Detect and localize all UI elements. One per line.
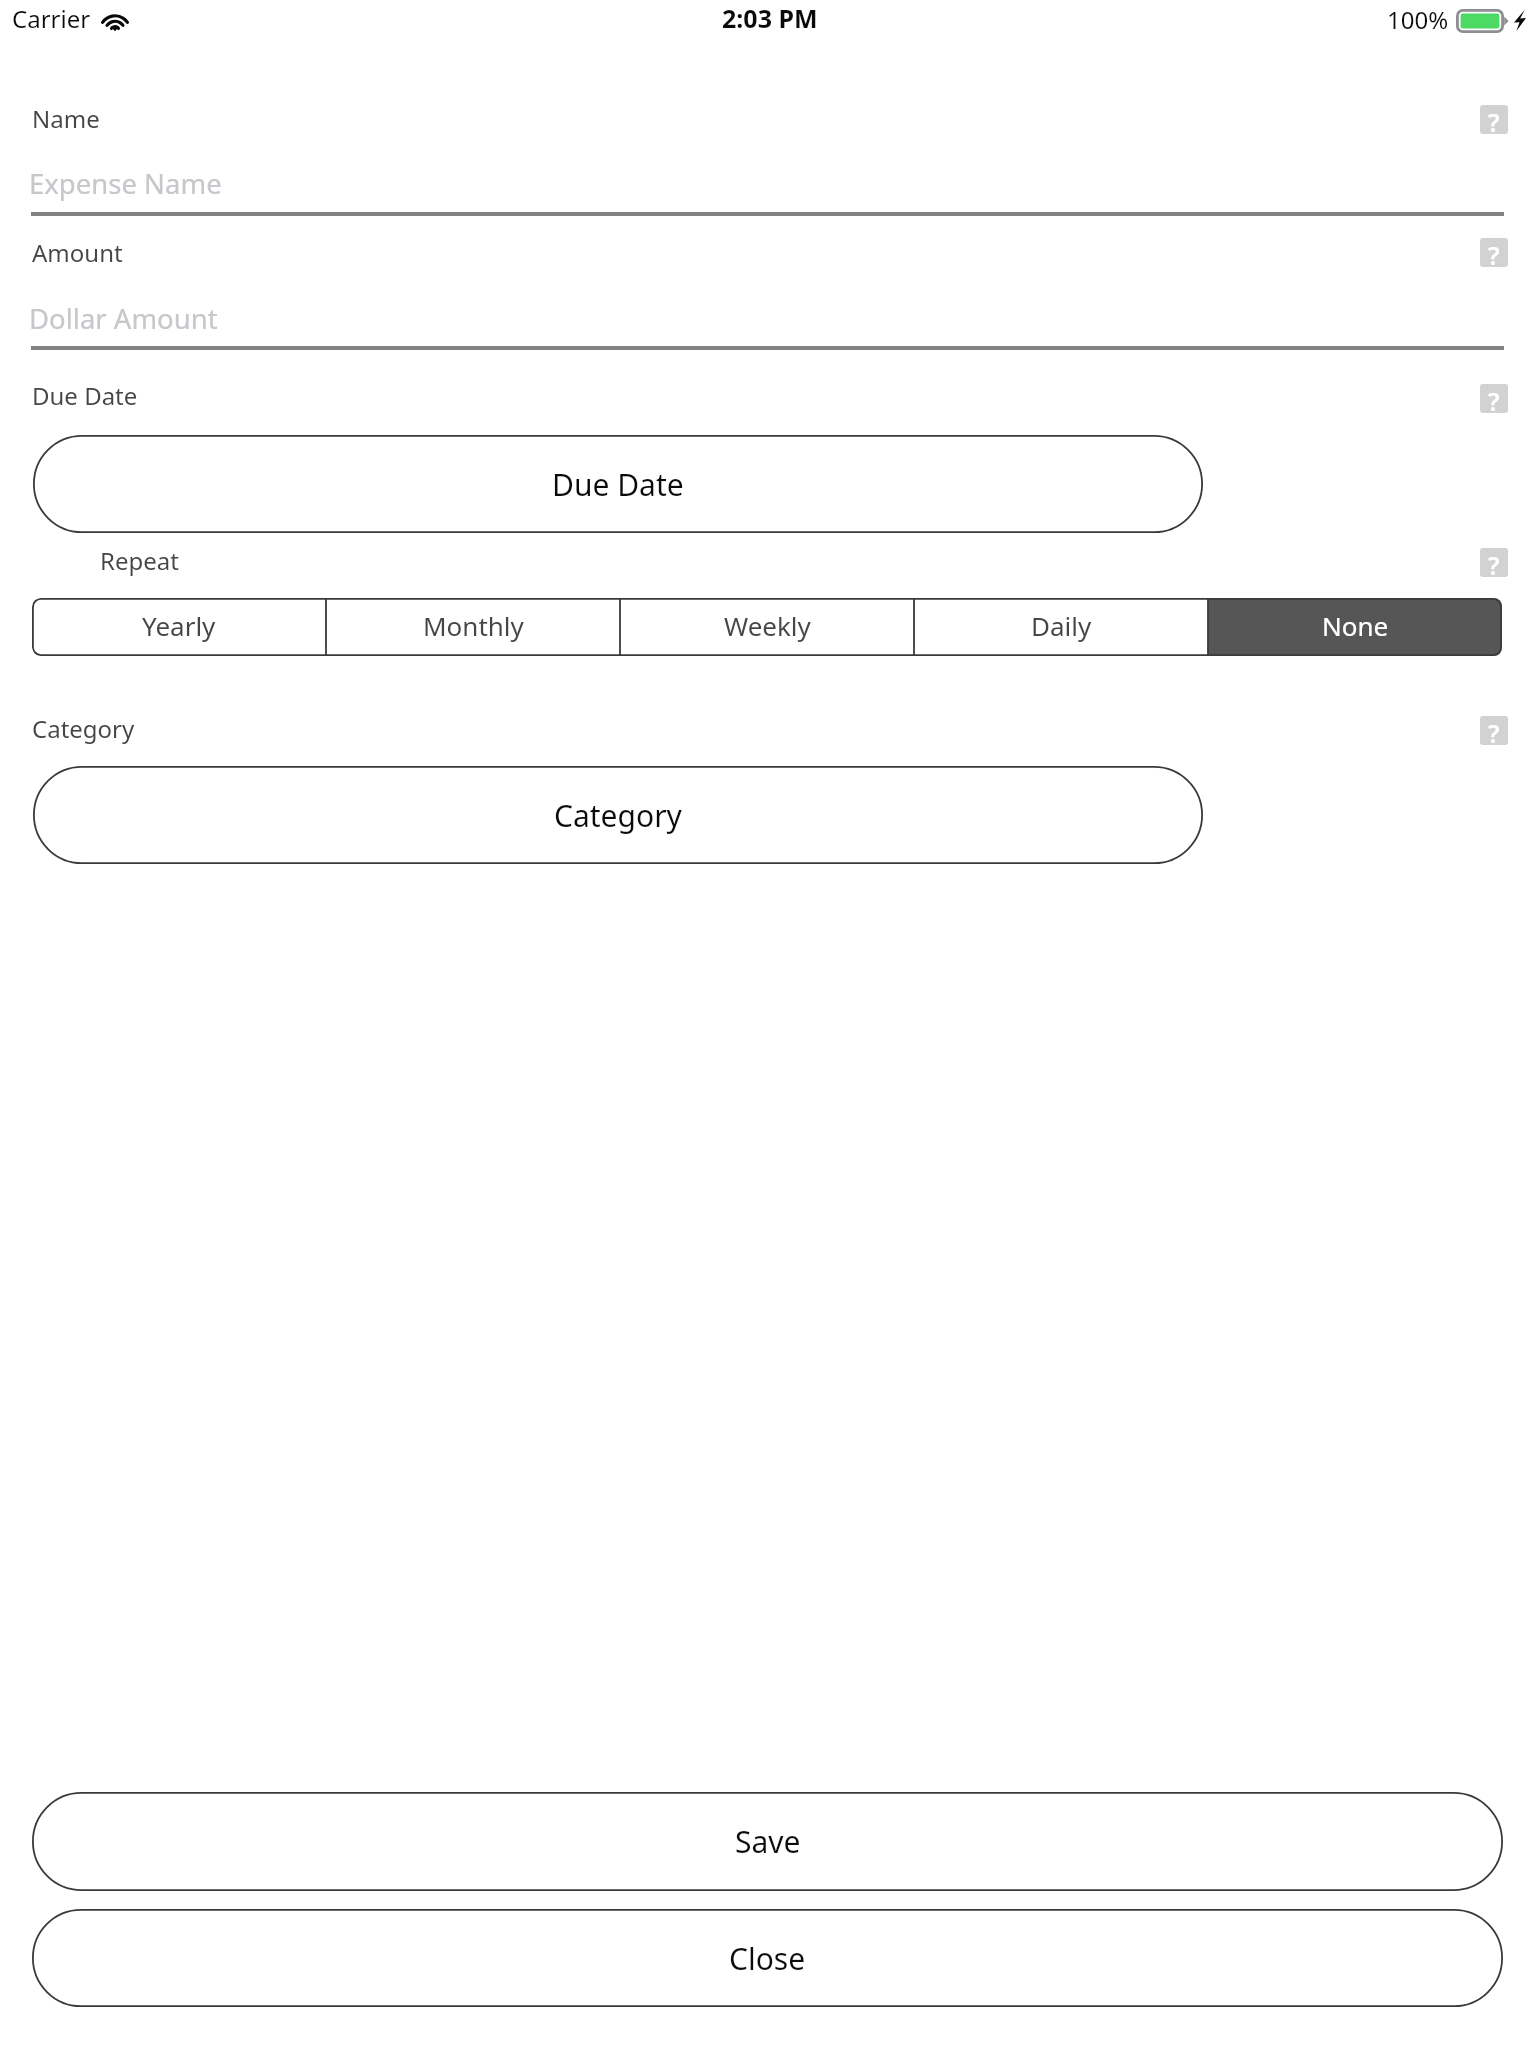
button[interactable]: Monthly	[326, 598, 620, 656]
staticText: Expense Name	[29, 165, 222, 202]
other: Charging	[1514, 10, 1526, 31]
other: Battery full	[1456, 9, 1509, 33]
staticText: Repeat	[100, 544, 179, 577]
button[interactable]: Due Date	[33, 435, 1203, 533]
other: Wifi	[99, 9, 131, 30]
staticText: 100%	[1387, 3, 1449, 36]
button[interactable]: Help	[1480, 548, 1508, 577]
button[interactable]: Help	[1480, 238, 1508, 267]
staticText: Dollar Amount	[29, 300, 218, 337]
staticText: Amount	[32, 236, 123, 269]
staticText: Category	[554, 795, 682, 836]
staticText: ?	[1488, 238, 1500, 267]
staticText: Monthly	[423, 608, 524, 643]
staticText: Due Date	[552, 464, 684, 505]
staticText: Category	[32, 712, 135, 745]
staticText: Carrier	[12, 2, 91, 35]
staticText: ?	[1488, 384, 1500, 413]
button[interactable]: Help	[1480, 384, 1508, 413]
staticText: ?	[1488, 716, 1500, 745]
button[interactable]: Close	[32, 1909, 1503, 2007]
button[interactable]: Help	[1480, 105, 1508, 134]
button[interactable]: Weekly	[620, 598, 914, 656]
staticText: Yearly	[142, 608, 216, 643]
staticText: ?	[1488, 548, 1500, 577]
staticText: Save	[735, 1821, 801, 1862]
button[interactable]: Daily	[914, 598, 1208, 656]
staticText: Name	[32, 102, 100, 135]
button[interactable]: Save	[32, 1792, 1503, 1891]
button[interactable]: Category	[33, 766, 1203, 864]
staticText: Daily	[1031, 608, 1092, 643]
staticText: Weekly	[724, 608, 811, 643]
button[interactable]: Yearly	[32, 598, 326, 656]
staticText: ?	[1488, 105, 1500, 134]
staticText: 2:03 PM	[722, 1, 818, 35]
staticText: None	[1322, 608, 1389, 643]
button[interactable]: None	[1208, 598, 1502, 656]
staticText: Close	[729, 1938, 806, 1979]
staticText: Due Date	[32, 379, 138, 412]
button[interactable]: Help	[1480, 716, 1508, 745]
